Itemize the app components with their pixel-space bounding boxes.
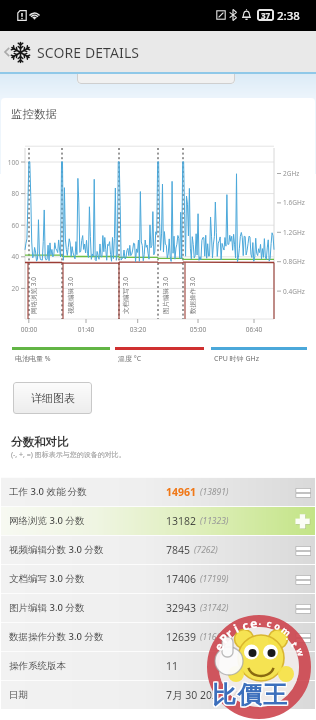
staticText: (17199)	[200, 573, 229, 585]
button[interactable]: 详细图表	[13, 382, 92, 414]
staticText: 比價王	[213, 679, 290, 709]
staticText: 1.6GHz	[283, 198, 305, 207]
button[interactable]: 数据操作分数 3.0 分数	[1, 622, 315, 651]
staticText: 01:40	[70, 325, 102, 334]
staticText: 比價王	[212, 679, 289, 709]
staticText: t	[289, 639, 301, 649]
staticText: 03:20	[122, 325, 154, 334]
staticText: (13891)	[200, 486, 229, 498]
staticText: 网络浏览 3.0 分数	[9, 514, 85, 527]
staticText: 文档编写 3.0	[121, 277, 130, 314]
staticText: 数据操作 3.0	[188, 277, 197, 314]
button[interactable]: 视频编辑分数 3.0 分数	[1, 535, 315, 564]
staticText: 11	[166, 659, 179, 673]
staticText: CPU 时钟 GHz	[214, 354, 259, 364]
staticText: 数据操作分数 3.0 分数	[9, 630, 104, 643]
staticText: e	[249, 615, 259, 631]
staticText: 网络浏览 3.0	[29, 277, 38, 314]
button[interactable]: 文档编写 3.0 分数	[1, 564, 315, 593]
staticText: 比價王	[212, 681, 289, 711]
staticText: .	[258, 615, 263, 627]
staticText: i	[231, 620, 241, 636]
staticText: (11663)	[200, 631, 229, 643]
button[interactable]: 网络浏览 3.0 分数	[1, 506, 315, 535]
staticText: 比價王	[213, 681, 290, 711]
staticText: 视频编辑分数 3.0 分数	[9, 543, 104, 556]
staticText: 文档编写 3.0 分数	[9, 572, 85, 585]
staticText: 100	[1, 158, 19, 167]
staticText: 14961	[166, 485, 197, 499]
staticText: 20	[1, 284, 19, 293]
staticText: 40	[1, 252, 19, 261]
staticText: 00:00	[13, 325, 45, 334]
staticText: .	[284, 632, 295, 642]
staticText: 操作系统版本	[9, 660, 66, 672]
button[interactable]: 操作系统版本	[1, 651, 315, 680]
staticText: P	[215, 630, 233, 646]
staticText: 32943	[166, 601, 197, 615]
staticText: 工作 3.0 效能 分数	[9, 485, 87, 498]
staticText: 12639	[166, 630, 197, 644]
staticText: c	[240, 616, 251, 634]
staticText: SCORE DETAILS	[37, 43, 140, 62]
staticText: (-, +, =) 图标表示与您的设备的对比。	[11, 450, 126, 460]
button[interactable]: 日期	[1, 680, 315, 709]
staticText: 2GHz	[283, 169, 300, 178]
staticText: (31742)	[200, 602, 229, 614]
staticText: 图片编辑 3.0 分数	[9, 601, 85, 614]
button[interactable]: 图片编辑 3.0 分数	[1, 593, 315, 622]
staticText: r	[222, 625, 236, 641]
staticText: 06:40	[238, 325, 270, 334]
staticText: 7845	[166, 543, 191, 557]
staticText: 0.8GHz	[283, 257, 305, 266]
staticText: 80	[1, 189, 19, 198]
staticText: (11323)	[200, 515, 229, 527]
staticText: 监控数据	[11, 107, 57, 121]
staticText: e	[210, 638, 228, 653]
staticText: 分数和对比	[11, 435, 69, 449]
staticText: 7月 30 2021 14:35	[166, 688, 254, 702]
staticText: 详细图表	[31, 391, 75, 405]
staticText: 60	[1, 221, 19, 230]
staticText: 日期	[9, 689, 28, 701]
staticText: 比價王	[211, 681, 288, 711]
staticText: 05:00	[182, 325, 214, 334]
staticText: 2:38	[277, 8, 300, 24]
staticText: 0.4GHz	[283, 287, 305, 296]
staticText: 比價王	[212, 680, 289, 710]
staticText: 温度 °C	[118, 354, 142, 364]
staticText: 37	[261, 10, 271, 21]
staticText: 13182	[166, 514, 197, 528]
staticText: 图片编辑 3.0	[161, 277, 170, 314]
staticText: 比價王	[211, 680, 288, 710]
staticText: 1.2GHz	[283, 228, 305, 237]
button[interactable]: Back	[1, 42, 13, 62]
staticText: (7262)	[194, 544, 218, 556]
staticText: 电池电量 %	[15, 354, 51, 364]
staticText: w	[294, 646, 308, 658]
staticText: 17406	[166, 572, 197, 586]
staticText: m	[279, 623, 294, 638]
staticText: 比價王	[211, 679, 288, 709]
staticText: 视频编辑 3.0	[66, 277, 75, 314]
staticText: c	[265, 616, 274, 629]
staticText: 比價王	[213, 680, 290, 710]
button[interactable]: 工作 3.0 效能 分数	[1, 477, 315, 506]
staticText: o	[272, 619, 283, 633]
